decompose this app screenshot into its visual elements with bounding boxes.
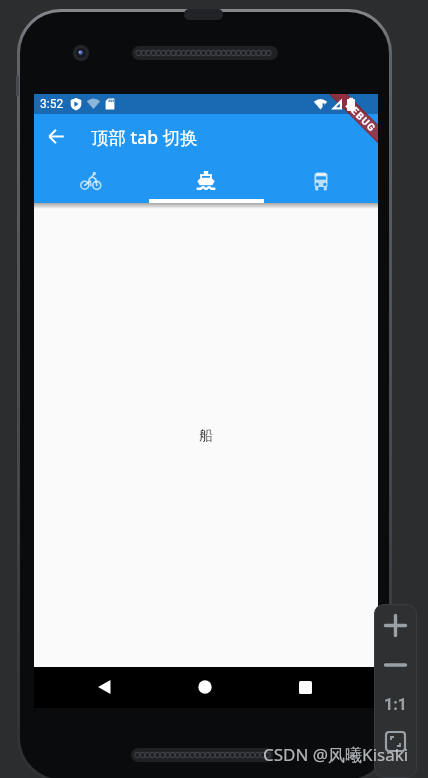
button[interactable] [263,159,378,203]
staticText: DEBUG [343,99,378,135]
button[interactable] [384,656,407,674]
button[interactable] [91,673,119,701]
staticText: CSDN @风曦Kisaki [263,743,409,766]
staticText: 1:1 [384,695,407,714]
button[interactable] [385,731,406,752]
button[interactable]: 1:1 [374,692,417,716]
button[interactable] [34,114,79,159]
staticText: 3:52 [40,97,64,111]
button[interactable] [191,673,219,701]
button[interactable] [34,159,148,203]
staticText: 顶部 tab 切换 [91,125,198,149]
button[interactable] [148,159,263,203]
button[interactable] [291,673,319,701]
staticText: 船 [199,427,213,444]
button[interactable] [384,614,407,637]
